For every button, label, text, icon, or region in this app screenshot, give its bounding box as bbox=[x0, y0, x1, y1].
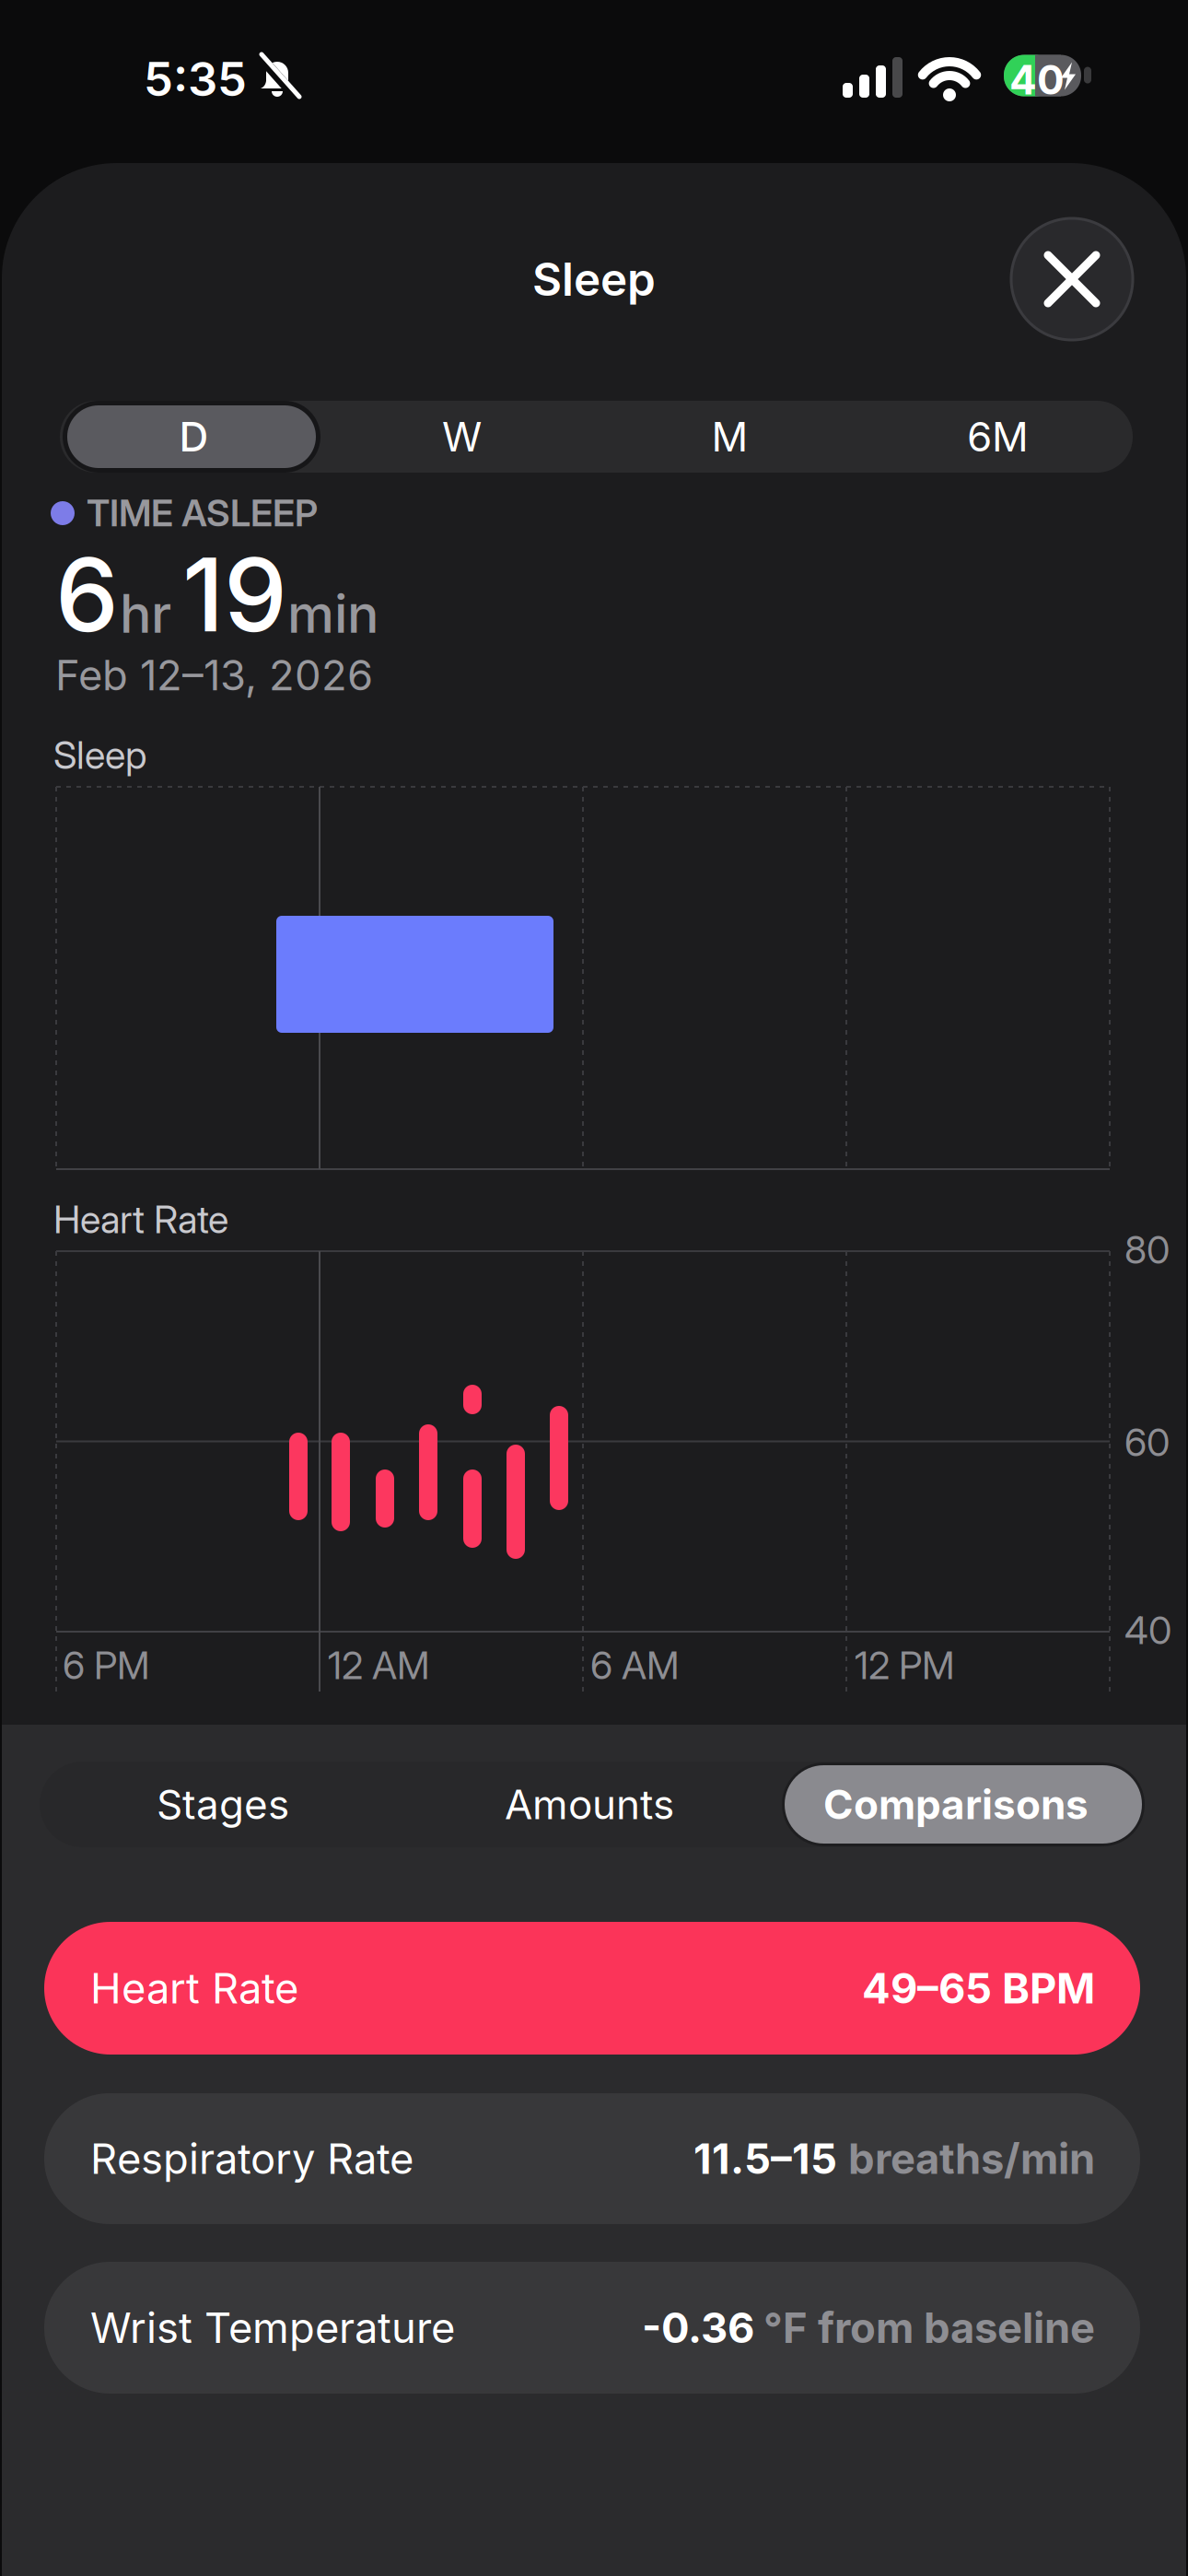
button[interactable]: Respiratory Rate bbox=[44, 2093, 1140, 2224]
staticText: Comparisons bbox=[823, 1780, 1089, 1828]
staticText: M bbox=[711, 413, 748, 461]
button[interactable]: M bbox=[596, 401, 864, 473]
staticText: 6 bbox=[55, 535, 119, 654]
button[interactable]: Stages bbox=[40, 1762, 406, 1847]
staticText: Respiratory Rate bbox=[90, 2134, 413, 2183]
staticText: Stages bbox=[157, 1780, 289, 1828]
button[interactable]: Close bbox=[1011, 218, 1133, 340]
staticText: breaths/min bbox=[848, 2134, 1095, 2183]
staticText: TIME ASLEEP bbox=[87, 491, 318, 535]
staticText: 49–65 BPM bbox=[862, 1964, 1095, 2013]
staticText: min bbox=[287, 582, 379, 645]
button[interactable]: 6M bbox=[864, 401, 1132, 473]
staticText: Heart Rate bbox=[90, 1964, 298, 2013]
staticText: Amounts bbox=[505, 1780, 674, 1828]
button[interactable]: Wrist Temperature bbox=[44, 2262, 1140, 2394]
staticText: hr bbox=[120, 582, 171, 645]
button[interactable]: D bbox=[60, 401, 328, 473]
staticText: 12 PM bbox=[855, 1643, 955, 1688]
staticText: -0.36 bbox=[642, 2303, 754, 2352]
button[interactable]: W bbox=[328, 401, 596, 473]
staticText: 40 bbox=[1009, 56, 1065, 104]
staticText: Sleep bbox=[53, 732, 146, 777]
staticText: 12 AM bbox=[328, 1643, 430, 1688]
staticText: 6 AM bbox=[590, 1643, 680, 1688]
staticText: 6M bbox=[967, 413, 1029, 461]
staticText: W bbox=[442, 413, 482, 461]
button[interactable]: Amounts bbox=[406, 1762, 773, 1847]
staticText: D bbox=[179, 413, 209, 461]
staticText: Heart Rate bbox=[53, 1197, 228, 1242]
staticText: 11.5–15 bbox=[693, 2134, 837, 2183]
staticText: °F from baseline bbox=[763, 2303, 1095, 2352]
staticText: 19 bbox=[182, 535, 287, 654]
staticText: 40 bbox=[1124, 1608, 1171, 1653]
staticText: 5:35 bbox=[144, 52, 247, 107]
button[interactable]: Comparisons bbox=[773, 1762, 1139, 1847]
staticText: 80 bbox=[1124, 1227, 1170, 1272]
button[interactable]: Heart Rate bbox=[44, 1922, 1140, 2055]
staticText: 6 PM bbox=[63, 1643, 150, 1688]
staticText: Sleep bbox=[532, 252, 656, 306]
staticText: 60 bbox=[1124, 1420, 1170, 1465]
staticText: Wrist Temperature bbox=[90, 2303, 455, 2352]
staticText: Feb 12–13, 2026 bbox=[55, 650, 373, 700]
